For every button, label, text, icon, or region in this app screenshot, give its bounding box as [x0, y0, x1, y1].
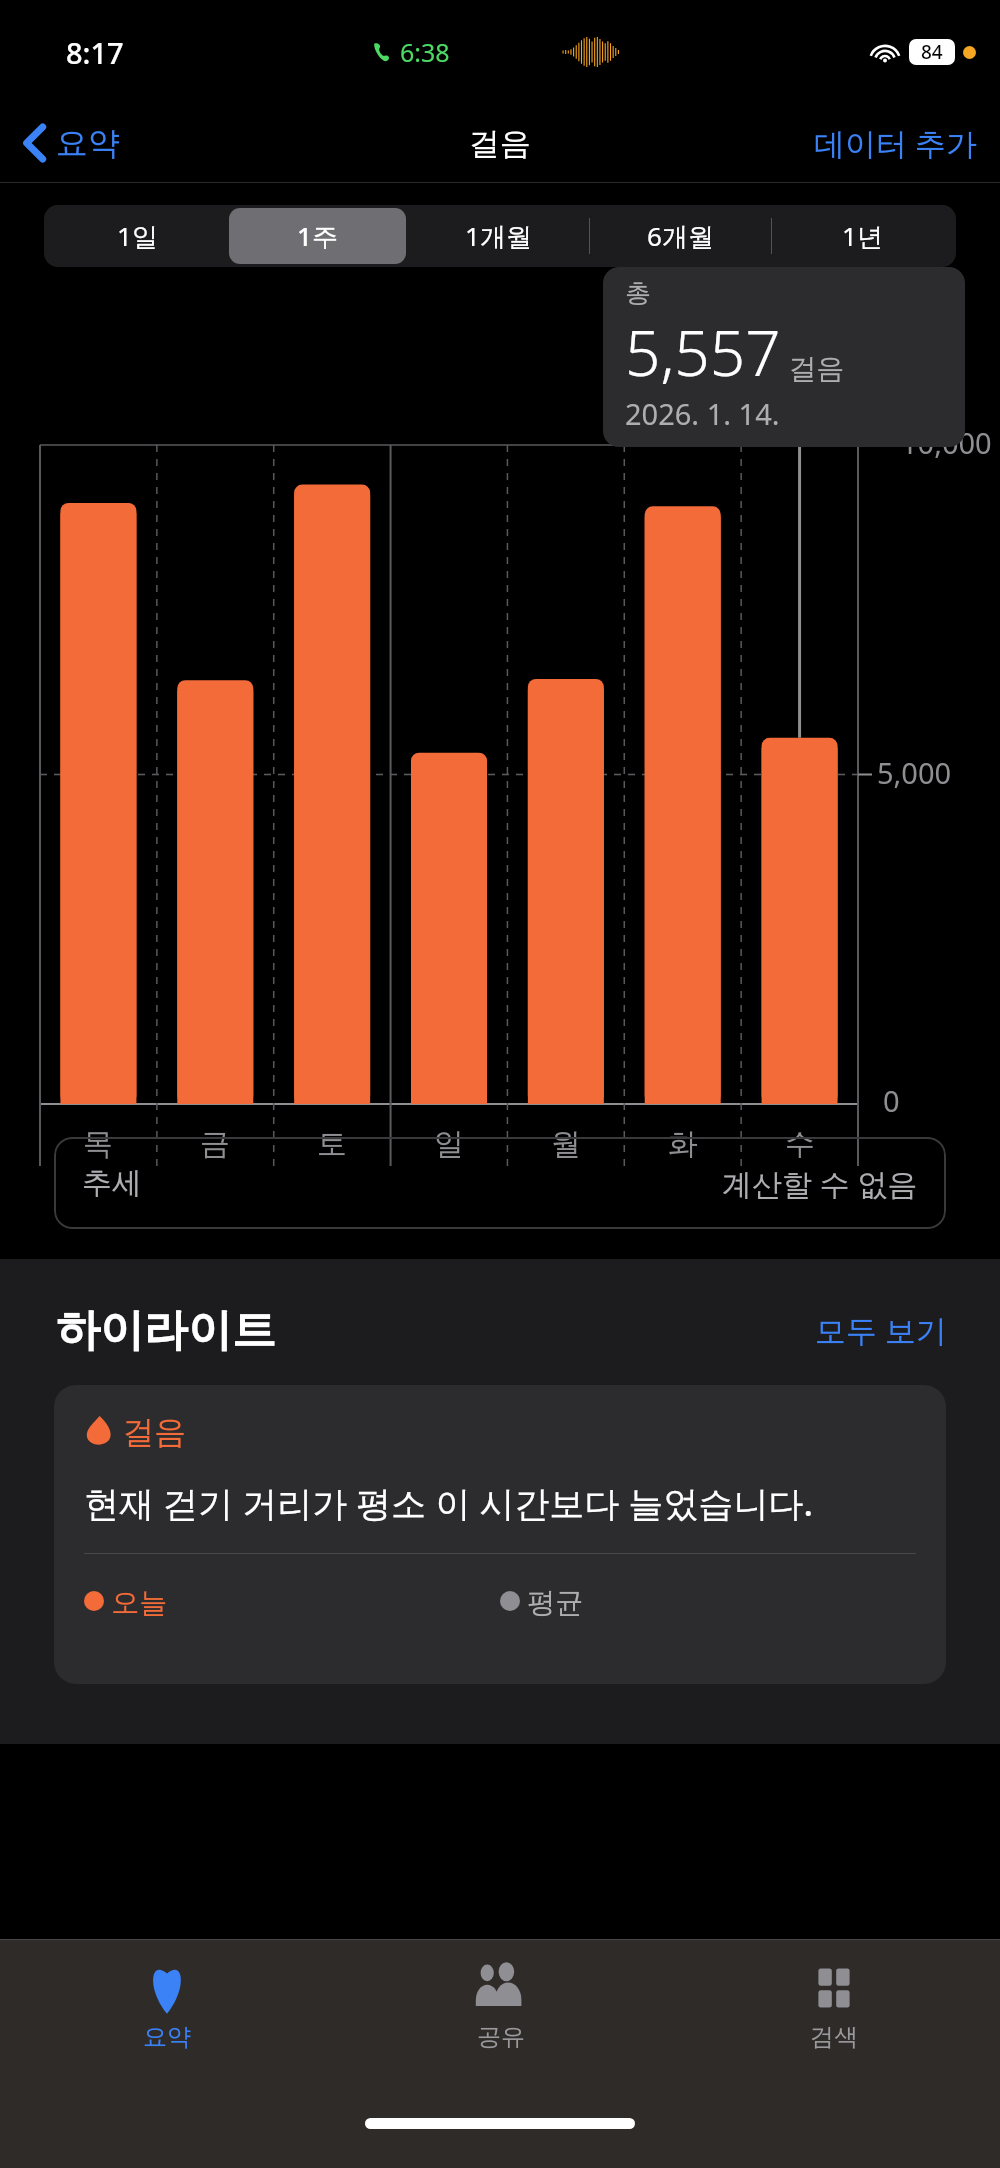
staticText: 일 [434, 1125, 464, 1163]
staticText: 추세 [82, 1164, 142, 1202]
staticText: 현재 걷기 거리가 평소 이 시간보다 늘었습니다. [84, 1479, 814, 1527]
staticText: 2026. 1. 14. [625, 394, 780, 433]
staticText: 1개월 [465, 218, 532, 254]
staticText: 5,557 [625, 310, 781, 394]
staticText: 월 [551, 1125, 581, 1163]
button[interactable]: 1주 [229, 208, 406, 264]
staticText: 요약 [143, 2022, 191, 2052]
staticText: 목 [83, 1125, 113, 1163]
staticText: 계산할 수 없음 [722, 1163, 918, 1204]
button[interactable]: 1년 [774, 208, 951, 264]
button[interactable]: 1일 [49, 208, 225, 264]
button[interactable]: 요약 [0, 1940, 334, 2090]
button[interactable]: 추세 [54, 1137, 946, 1229]
staticText: 총 [625, 277, 651, 310]
button[interactable]: 공유 [334, 1940, 667, 2090]
staticText: 평균 [520, 1582, 584, 1620]
staticText: 걸음 [469, 124, 531, 163]
button[interactable]: 6개월 [592, 208, 769, 264]
staticText: 금 [200, 1125, 230, 1163]
staticText: 공유 [477, 2022, 525, 2052]
staticText: 걸음 [114, 1409, 187, 1453]
staticText: 6개월 [647, 218, 714, 254]
staticText: 1주 [297, 218, 338, 254]
staticText: 5,000 [877, 753, 952, 792]
staticText: 1년 [842, 218, 883, 254]
staticText: 걸음 [781, 348, 845, 386]
staticText: 0 [883, 1081, 900, 1120]
staticText: 1일 [117, 218, 158, 254]
staticText: 10,000 [901, 423, 992, 462]
button[interactable]: 검색 [667, 1940, 1000, 2090]
staticText: 수 [785, 1125, 815, 1163]
button[interactable]: 1개월 [410, 208, 587, 264]
button[interactable]: 요약 [18, 117, 126, 169]
staticText: 검색 [810, 2022, 858, 2052]
staticText: 토 [317, 1125, 347, 1163]
staticText: 오늘 [104, 1582, 168, 1620]
button[interactable]: 걸음 [54, 1385, 946, 1684]
button[interactable]: 데이터 추가 [792, 112, 1000, 174]
staticText: 84 [921, 39, 943, 65]
staticText: 요약 [56, 123, 120, 163]
staticText: 8:17 [66, 33, 124, 72]
staticText: 하이라이트 [56, 1303, 276, 1358]
button[interactable]: 모두 보기 [807, 1301, 956, 1359]
staticText: 화 [668, 1125, 698, 1163]
staticText: 6:38 [400, 35, 450, 69]
